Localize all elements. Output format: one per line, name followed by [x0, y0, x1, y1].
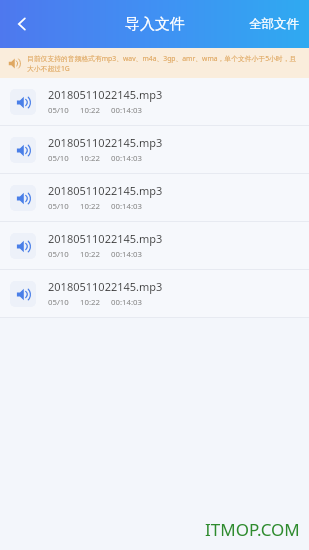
button[interactable]: 20180511022145.mp3	[0, 222, 309, 269]
staticText: ITMOP.COM	[205, 518, 300, 541]
staticText: 05/10	[48, 201, 69, 212]
staticText: 20180511022145.mp3	[48, 87, 163, 102]
staticText: 10:22	[80, 153, 100, 164]
staticText: 20180511022145.mp3	[48, 135, 163, 150]
staticText: 20180511022145.mp3	[48, 279, 163, 294]
staticText: 10:22	[80, 249, 100, 260]
staticText: 全部文件	[249, 16, 299, 32]
staticText: 05/10	[48, 249, 69, 260]
button[interactable]: 20180511022145.mp3	[0, 126, 309, 173]
staticText: 20180511022145.mp3	[48, 183, 163, 198]
button[interactable]: 20180511022145.mp3	[0, 78, 309, 125]
staticText: 00:14:03	[111, 105, 142, 116]
staticText: 10:22	[80, 201, 100, 212]
staticText: 00:14:03	[111, 153, 142, 164]
staticText: 00:14:03	[111, 249, 142, 260]
staticText: 05/10	[48, 105, 69, 116]
button[interactable]: Back	[0, 0, 44, 48]
staticText: 20180511022145.mp3	[48, 231, 163, 246]
staticText: 00:14:03	[111, 201, 142, 212]
button[interactable]: 全部文件	[239, 0, 309, 48]
staticText: 10:22	[80, 297, 100, 308]
staticText: 00:14:03	[111, 297, 142, 308]
staticText: 目前仅支持的音频格式有mp3、wav、m4a、3gp、amr、wma，单个文件小…	[27, 54, 303, 73]
staticText: 10:22	[80, 105, 100, 116]
button[interactable]: 20180511022145.mp3	[0, 174, 309, 221]
staticText: 导入文件	[125, 15, 185, 34]
staticText: 05/10	[48, 153, 69, 164]
button[interactable]: 20180511022145.mp3	[0, 270, 309, 317]
staticText: 05/10	[48, 297, 69, 308]
